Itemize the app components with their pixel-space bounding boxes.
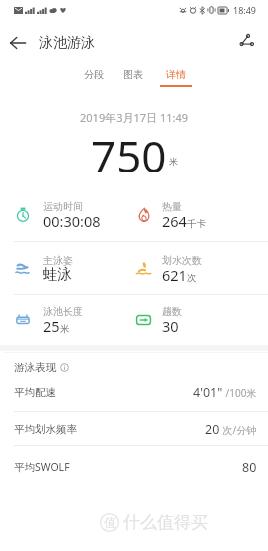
- staticText: 2019年3月17日 11:49: [80, 110, 189, 125]
- staticText: 趟数: [162, 305, 182, 318]
- staticText: /100米: [223, 386, 257, 400]
- button[interactable]: 主泳姿: [10, 246, 128, 292]
- button[interactable]: 泳池长度: [10, 297, 128, 343]
- staticText: 值: [104, 515, 116, 530]
- staticText: 00:30:08: [43, 211, 101, 231]
- staticText: 运动时间: [43, 200, 83, 213]
- staticText: 4'01": [193, 384, 223, 401]
- staticText: 平均配速: [14, 386, 56, 399]
- staticText: 划水次数: [162, 254, 202, 267]
- staticText: 泳池游泳: [39, 34, 95, 52]
- staticText: 30: [162, 316, 179, 336]
- button[interactable]: 详情: [158, 62, 194, 92]
- staticText: 18:49: [233, 4, 257, 16]
- staticText: 蛙泳: [43, 265, 72, 283]
- staticText: 20: [205, 421, 220, 438]
- staticText: 次: [187, 272, 197, 284]
- staticText: 平均划水频率: [14, 423, 77, 436]
- staticText: 264: [162, 211, 187, 231]
- button[interactable]: 图表: [115, 62, 151, 92]
- staticText: 什么值得买: [123, 512, 208, 533]
- button[interactable]: 热量: [131, 192, 261, 238]
- button[interactable]: Share: [232, 26, 260, 54]
- staticText: 图表: [123, 68, 143, 81]
- button[interactable]: 划水次数: [131, 246, 261, 292]
- staticText: 次/分钟: [220, 423, 257, 437]
- button[interactable]: 平均划水频率: [0, 413, 268, 445]
- button[interactable]: 平均SWOLF: [0, 451, 268, 483]
- staticText: 米: [169, 156, 178, 167]
- staticText: 详情: [166, 68, 186, 81]
- button[interactable]: 趟数: [131, 297, 261, 343]
- staticText: 米: [60, 323, 70, 335]
- staticText: 热量: [162, 200, 182, 213]
- button[interactable]: 运动时间: [10, 192, 128, 238]
- button[interactable]: 平均配速: [0, 376, 268, 408]
- staticText: 平均SWOLF: [14, 460, 70, 474]
- staticText: 主泳姿: [43, 254, 73, 267]
- staticText: 25: [43, 316, 60, 336]
- button[interactable]: 分段: [76, 62, 112, 92]
- staticText: 千卡: [187, 218, 206, 230]
- button[interactable]: Back: [4, 29, 32, 57]
- staticText: 750: [91, 126, 167, 172]
- staticText: 80: [242, 459, 257, 476]
- staticText: 游泳表现: [14, 361, 56, 374]
- staticText: 分段: [84, 68, 104, 81]
- staticText: 621: [162, 265, 187, 285]
- staticText: 泳池长度: [43, 305, 83, 318]
